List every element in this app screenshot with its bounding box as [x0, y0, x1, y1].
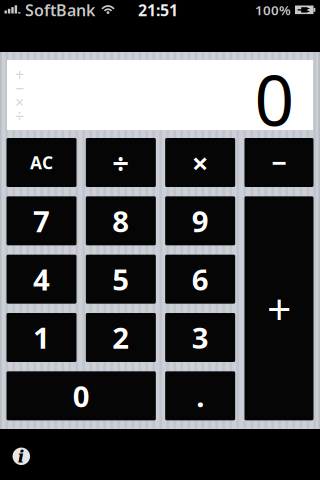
button[interactable]: ×: [165, 138, 235, 187]
button[interactable]: ÷: [86, 138, 156, 187]
staticText: 4: [33, 260, 50, 299]
staticText: 21:51: [138, 0, 178, 21]
button[interactable]: 3: [165, 313, 235, 362]
button[interactable]: 6: [165, 255, 235, 304]
button[interactable]: 2: [86, 313, 156, 362]
staticText: AC: [30, 151, 53, 174]
staticText: 9: [192, 201, 209, 240]
staticText: −: [271, 145, 286, 180]
staticText: 0: [254, 53, 294, 145]
staticText: 8: [112, 201, 129, 240]
staticText: i: [18, 446, 25, 466]
staticText: +: [15, 64, 24, 85]
button[interactable]: −: [244, 138, 313, 187]
staticText: ÷: [112, 143, 129, 182]
staticText: 100%: [255, 1, 291, 19]
staticText: 3: [192, 318, 209, 357]
staticText: 0: [73, 376, 90, 415]
button[interactable]: AC: [6, 138, 76, 187]
staticText: +: [267, 280, 291, 337]
staticText: 5: [112, 260, 129, 299]
staticText: .: [196, 376, 204, 415]
button[interactable]: 0: [6, 371, 156, 420]
staticText: ×: [192, 143, 209, 182]
button[interactable]: 7: [6, 196, 76, 245]
staticText: 1: [33, 318, 50, 357]
button[interactable]: 1: [6, 313, 76, 362]
button[interactable]: 9: [165, 196, 235, 245]
staticText: ×: [15, 91, 24, 113]
staticText: SoftBank: [25, 0, 95, 21]
button[interactable]: 4: [6, 255, 76, 304]
button[interactable]: +: [244, 196, 313, 420]
button[interactable]: .: [165, 371, 235, 420]
staticText: −: [15, 77, 24, 99]
staticText: 2: [112, 318, 129, 357]
staticText: 6: [192, 260, 209, 299]
button[interactable]: 8: [86, 196, 156, 245]
button[interactable]: Info: [13, 448, 30, 465]
staticText: ÷: [15, 105, 24, 126]
button[interactable]: 5: [86, 255, 156, 304]
staticText: 7: [33, 201, 50, 240]
